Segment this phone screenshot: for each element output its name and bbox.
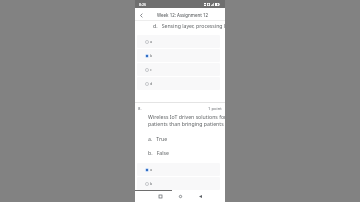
staticText: c [150, 67, 152, 72]
button[interactable]: a [137, 163, 220, 176]
staticText: a [150, 39, 153, 44]
button[interactable]: a [137, 35, 220, 48]
staticText: 8:26 [139, 2, 147, 7]
staticText: patients than bringing patients to hospi… [148, 120, 225, 127]
button[interactable]: d [137, 77, 220, 90]
staticText: 8. [138, 106, 142, 112]
staticText: b [150, 181, 153, 186]
staticText: Week 12: Assignment 12 [157, 12, 209, 18]
button[interactable]: b [137, 177, 220, 190]
button[interactable]: Back [190, 191, 210, 202]
staticText: a. True [148, 135, 168, 142]
staticText: d. Sensing layer, processing layer, appl… [153, 22, 225, 29]
button[interactable]: b [137, 49, 220, 62]
staticText: b. False [148, 149, 169, 156]
staticText: d [150, 81, 153, 86]
staticText: b [150, 53, 153, 58]
button[interactable]: Back [136, 10, 146, 20]
button[interactable]: c [137, 63, 220, 76]
staticText: 1 point [208, 106, 222, 112]
staticText: Wireless IoT driven solutions for remote… [148, 113, 225, 120]
button[interactable]: Home [170, 191, 190, 202]
staticText: a [150, 167, 153, 172]
button[interactable]: Recent apps [150, 191, 170, 202]
